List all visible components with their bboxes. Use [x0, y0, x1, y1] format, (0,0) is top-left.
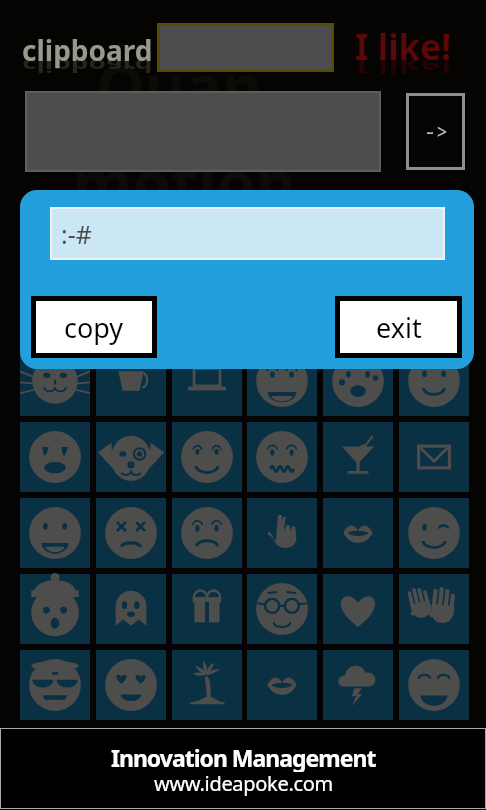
staticText: motion: [72, 140, 296, 224]
button[interactable]: Send: [406, 93, 465, 170]
staticText: ->: [424, 118, 448, 145]
button[interactable]: ghost: [96, 574, 166, 644]
button[interactable]: copy: [36, 301, 152, 353]
button[interactable]: heart: [323, 574, 393, 644]
button[interactable]: gift: [172, 574, 242, 644]
button[interactable]: wink: [399, 498, 469, 568]
button[interactable]: hearteyes: [96, 650, 166, 720]
button[interactable]: storm: [323, 650, 393, 720]
button[interactable]: hat: [20, 574, 90, 644]
button[interactable]: cry: [323, 346, 393, 416]
staticText: I like!: [355, 51, 452, 81]
staticText: copy: [64, 309, 124, 346]
staticText: Innovation Management: [111, 742, 376, 772]
staticText: I like!: [355, 23, 452, 71]
button[interactable]: joy: [399, 650, 469, 720]
button[interactable]: Emoticon field: [52, 209, 443, 258]
staticText: www.ideapoke.com: [154, 770, 333, 797]
button[interactable]: mail: [399, 422, 469, 492]
button[interactable]: sunglasses: [20, 650, 90, 720]
button[interactable]: laugh: [247, 346, 317, 416]
button[interactable]: glasses: [247, 574, 317, 644]
button[interactable]: coffee: [96, 346, 166, 416]
staticText: :-#: [61, 217, 92, 251]
button[interactable]: palm: [172, 650, 242, 720]
button[interactable]: laptop: [172, 346, 242, 416]
button[interactable]: sad: [172, 498, 242, 568]
button[interactable]: angry: [96, 498, 166, 568]
button[interactable]: cocktail: [323, 422, 393, 492]
staticText: Quan: [96, 44, 263, 128]
button[interactable]: bigsmile: [20, 498, 90, 568]
button[interactable]: wave: [399, 574, 469, 644]
button[interactable]: exit: [340, 301, 457, 353]
button[interactable]: hand: [247, 498, 317, 568]
button[interactable]: lips: [323, 498, 393, 568]
button[interactable]: cat: [20, 346, 90, 416]
button[interactable]: dog: [96, 422, 166, 492]
button[interactable]: confused: [247, 422, 317, 492]
button[interactable]: grin: [172, 422, 242, 492]
button[interactable]: frown: [20, 422, 90, 492]
button[interactable]: smile: [399, 346, 469, 416]
staticText: clipboard: [22, 31, 153, 69]
staticText: clipboard: [22, 54, 153, 78]
staticText: exit: [376, 309, 422, 346]
button[interactable]: lips2: [247, 650, 317, 720]
